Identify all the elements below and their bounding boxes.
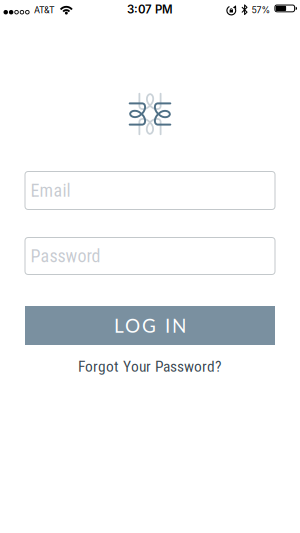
staticText: AT&T bbox=[34, 5, 55, 15]
button[interactable]: Email bbox=[24, 171, 275, 210]
button[interactable]: Forgot Your Password? bbox=[78, 357, 222, 376]
staticText: 57% bbox=[251, 5, 270, 15]
staticText: LOG IN bbox=[114, 314, 186, 337]
staticText: Forgot Your Password? bbox=[78, 357, 222, 376]
button[interactable]: Password bbox=[24, 237, 275, 275]
button[interactable]: LOG IN bbox=[25, 306, 275, 345]
staticText: Password bbox=[30, 245, 100, 267]
staticText: Email bbox=[30, 180, 70, 201]
staticText: 3:07 PM bbox=[127, 2, 173, 16]
